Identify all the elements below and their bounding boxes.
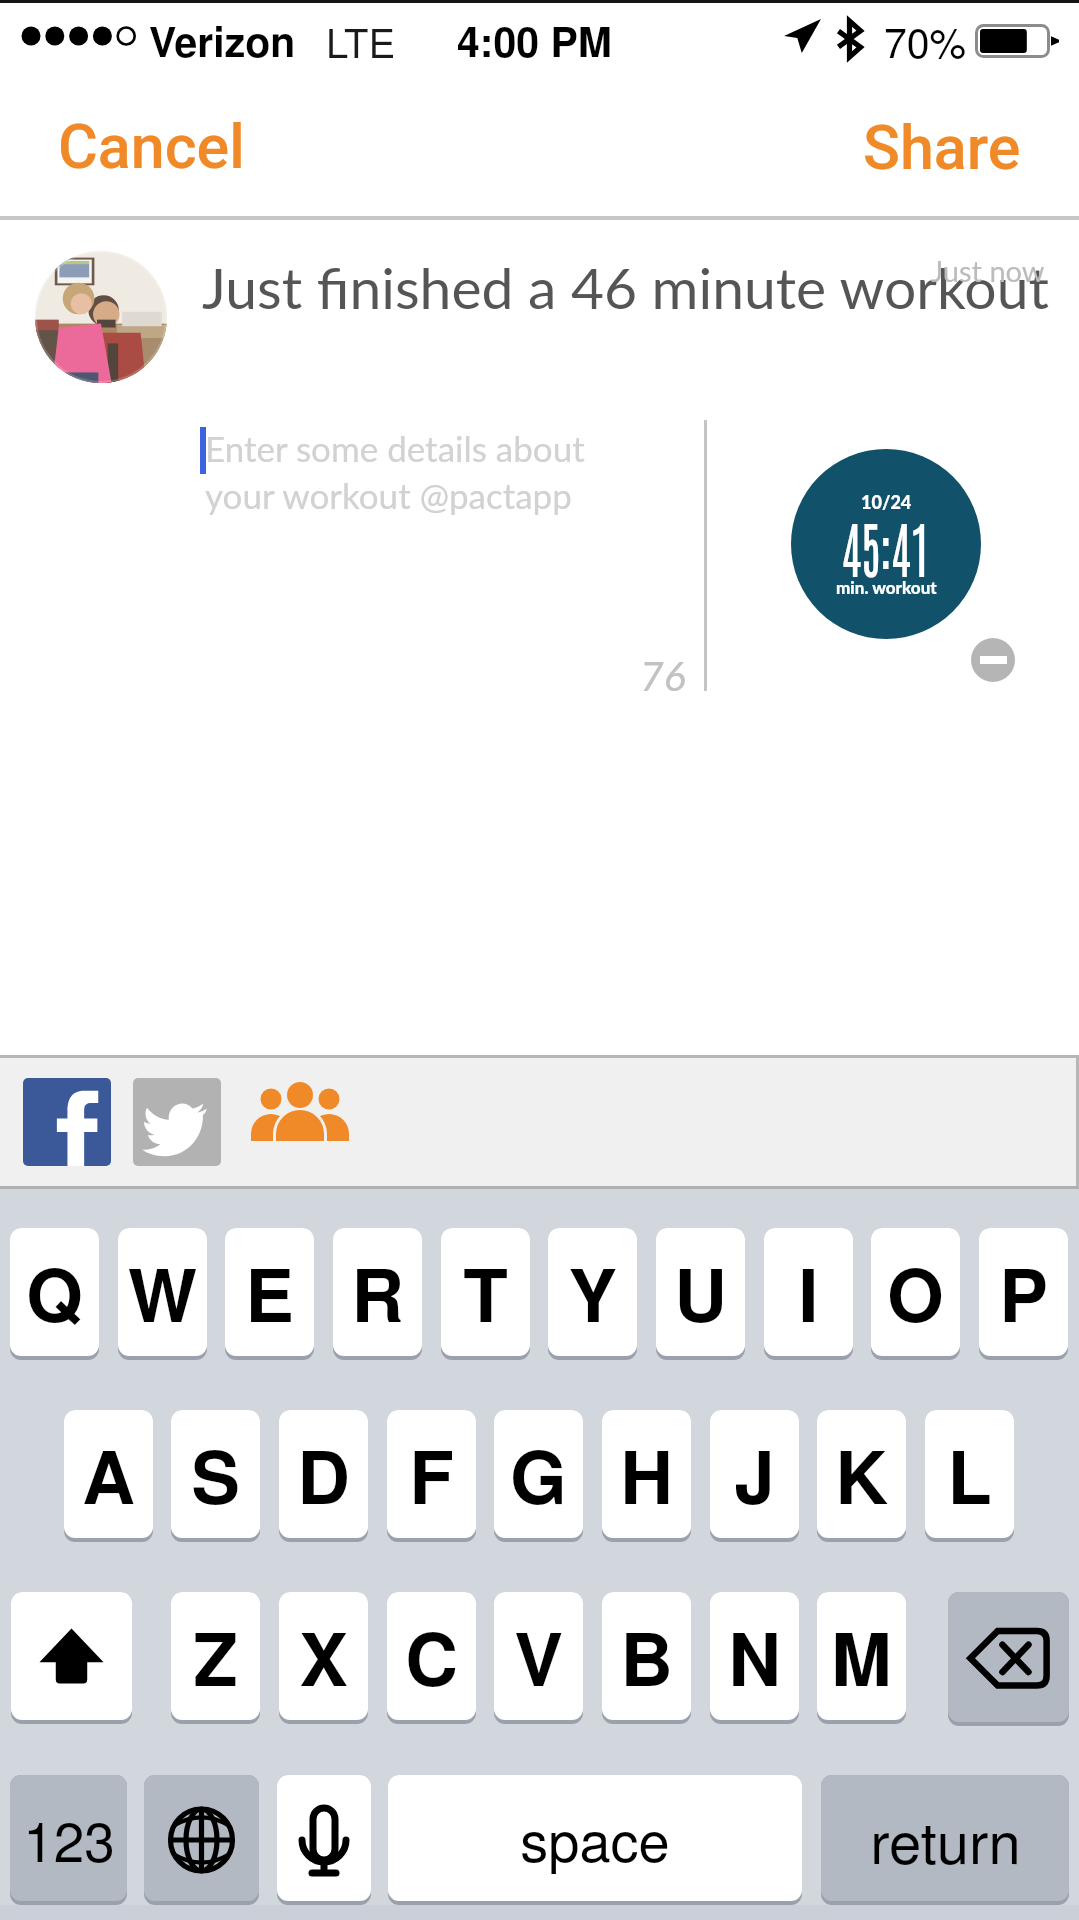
staticText: return: [870, 1797, 1021, 1880]
staticText: Just now: [931, 253, 1045, 288]
button[interactable]: Q: [10, 1228, 99, 1356]
button[interactable]: D: [279, 1410, 368, 1538]
staticText: V: [514, 1604, 563, 1709]
staticText: E: [245, 1240, 294, 1345]
button[interactable]: E: [225, 1228, 314, 1356]
button[interactable]: K: [817, 1410, 906, 1538]
button[interactable]: W: [118, 1228, 207, 1356]
button[interactable]: L: [925, 1410, 1014, 1538]
button[interactable]: H: [602, 1410, 691, 1538]
button[interactable]: Share to Twitter: [133, 1078, 221, 1166]
staticText: O: [887, 1240, 944, 1345]
button[interactable]: Dictate: [277, 1775, 371, 1901]
button[interactable]: Share to Facebook: [23, 1078, 111, 1166]
button[interactable]: B: [602, 1592, 691, 1720]
button[interactable]: A: [64, 1410, 153, 1538]
staticText: 10/24: [861, 491, 912, 513]
staticText: M: [831, 1604, 892, 1709]
button[interactable]: Z: [171, 1592, 260, 1720]
staticText: LTE: [326, 12, 396, 69]
staticText: Cancel: [58, 111, 245, 182]
button[interactable]: F: [387, 1410, 476, 1538]
staticText: F: [409, 1422, 454, 1527]
button[interactable]: C: [387, 1592, 476, 1720]
button[interactable]: Shift: [11, 1592, 132, 1720]
button[interactable]: 123: [10, 1775, 127, 1901]
staticText: space: [520, 1798, 670, 1878]
staticText: X: [299, 1604, 348, 1709]
staticText: N: [728, 1604, 781, 1709]
staticText: G: [510, 1422, 567, 1527]
button[interactable]: M: [817, 1592, 906, 1720]
staticText: 70%: [884, 11, 967, 70]
staticText: Q: [26, 1240, 83, 1345]
button[interactable]: S: [171, 1410, 260, 1538]
button[interactable]: R: [333, 1228, 422, 1356]
button[interactable]: U: [656, 1228, 745, 1356]
button[interactable]: P: [979, 1228, 1068, 1356]
staticText: Just finished a 46 minute workout: [202, 253, 1049, 321]
button[interactable]: X: [279, 1592, 368, 1720]
button[interactable]: 10/24: [791, 449, 981, 639]
staticText: 4:00 PM: [457, 11, 612, 70]
staticText: Enter some details about your workout @p…: [205, 427, 585, 516]
button[interactable]: Y: [548, 1228, 637, 1356]
button[interactable]: Remove: [971, 638, 1015, 682]
button[interactable]: I: [764, 1228, 853, 1356]
staticText: C: [405, 1604, 458, 1709]
button[interactable]: Share: [829, 75, 1055, 220]
button[interactable]: Share to friends: [248, 1066, 352, 1158]
staticText: J: [734, 1422, 775, 1527]
button[interactable]: Backspace: [948, 1592, 1069, 1722]
button[interactable]: Next keyboard: [144, 1775, 259, 1901]
staticText: Share: [863, 112, 1021, 183]
staticText: I: [798, 1240, 819, 1345]
staticText: L: [947, 1422, 992, 1527]
staticText: 123: [23, 1799, 115, 1878]
button[interactable]: Cancel: [24, 74, 279, 219]
button[interactable]: N: [710, 1592, 799, 1720]
button[interactable]: J: [710, 1410, 799, 1538]
staticText: 76: [640, 651, 686, 700]
button[interactable]: T: [441, 1228, 530, 1356]
staticText: Y: [568, 1240, 617, 1345]
staticText: S: [191, 1422, 240, 1527]
staticText: K: [835, 1422, 888, 1527]
staticText: B: [620, 1604, 673, 1709]
staticText: R: [351, 1240, 404, 1345]
staticText: min. workout: [836, 577, 937, 597]
staticText: U: [674, 1240, 727, 1345]
button[interactable]: return: [821, 1775, 1069, 1901]
staticText: Z: [193, 1604, 238, 1709]
staticText: 45:41: [842, 506, 930, 586]
staticText: T: [463, 1240, 508, 1345]
button[interactable]: space: [388, 1775, 802, 1901]
button[interactable]: O: [871, 1228, 960, 1356]
staticText: D: [297, 1422, 350, 1527]
staticText: A: [82, 1422, 135, 1527]
staticText: H: [620, 1422, 673, 1527]
button[interactable]: G: [494, 1410, 583, 1538]
staticText: P: [999, 1240, 1048, 1345]
staticText: W: [128, 1240, 197, 1345]
button[interactable]: V: [494, 1592, 583, 1720]
staticText: Verizon: [149, 11, 296, 70]
